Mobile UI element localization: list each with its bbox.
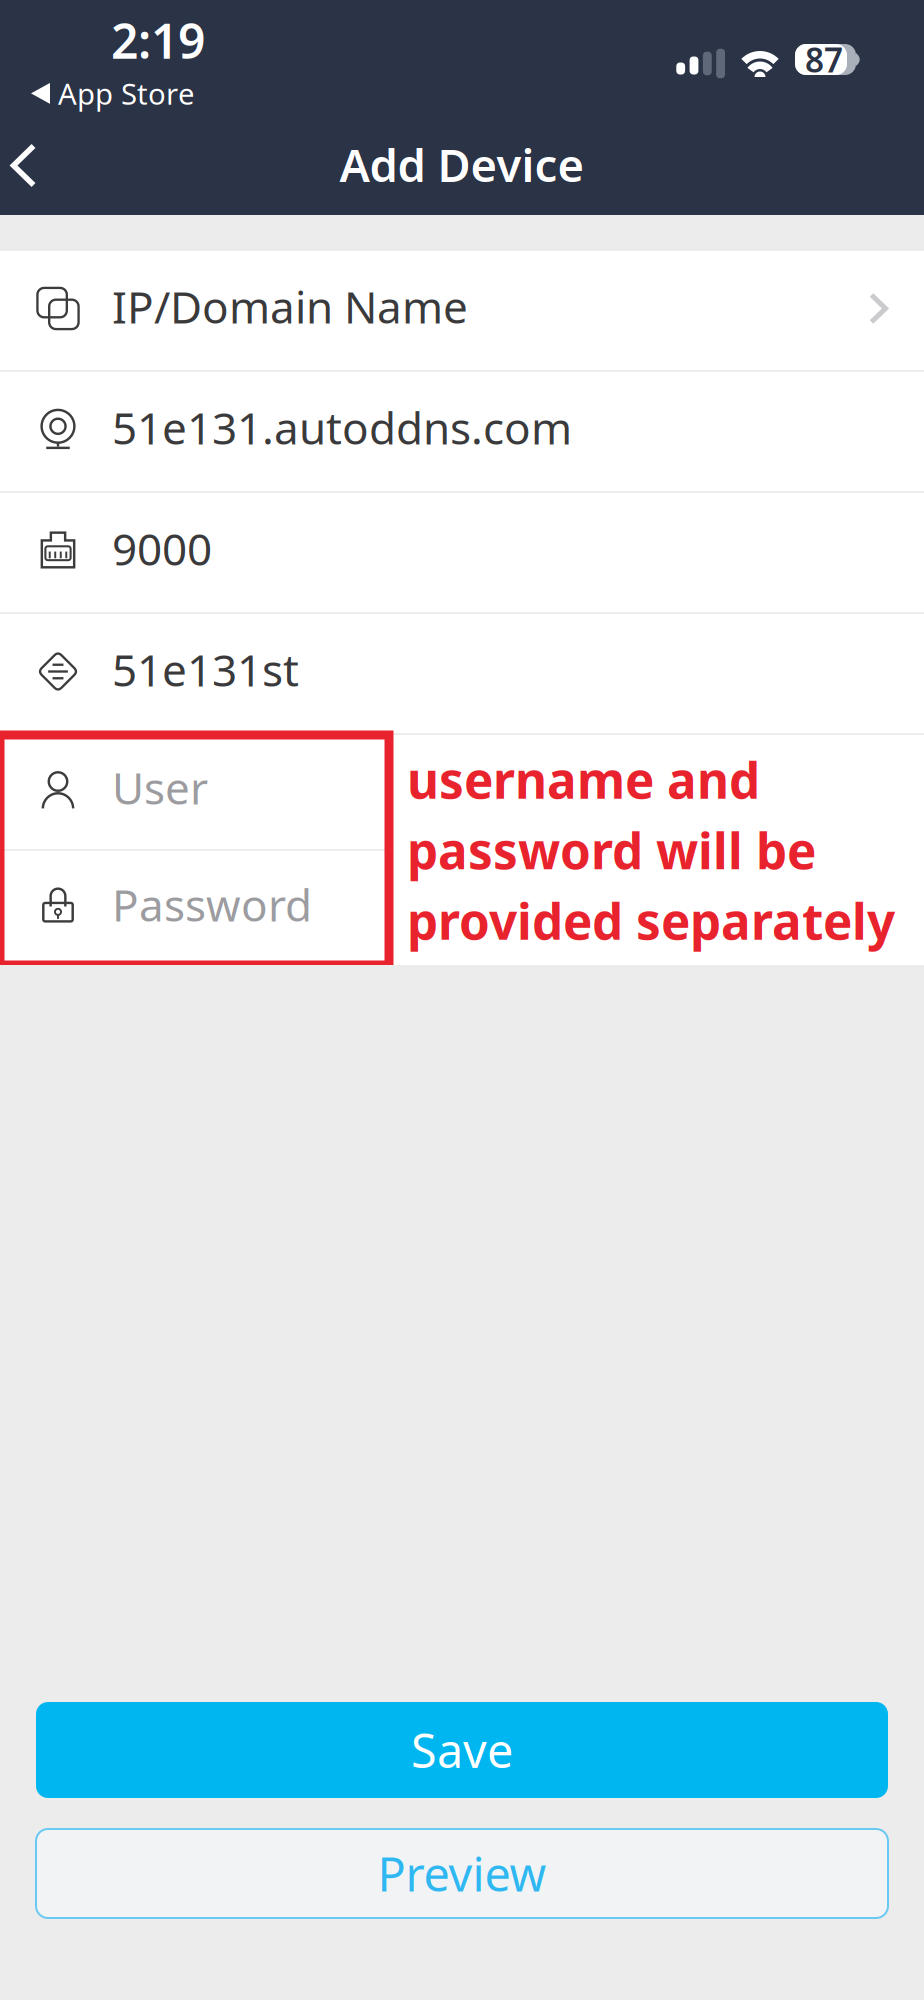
staticText: username and bbox=[407, 747, 760, 812]
staticText: provided separately bbox=[407, 888, 895, 953]
staticText: 2:19 bbox=[111, 8, 205, 72]
button[interactable]: Back bbox=[0, 119, 66, 211]
button[interactable]: IP/Domain Name bbox=[0, 251, 924, 370]
staticText: 9000 bbox=[112, 519, 212, 578]
button[interactable]: 51e131.autoddns.com bbox=[0, 372, 924, 491]
button[interactable]: Preview bbox=[36, 1829, 888, 1918]
button[interactable]: Save bbox=[36, 1702, 888, 1798]
staticText: Password bbox=[112, 875, 312, 934]
staticText: password will be bbox=[407, 817, 816, 883]
staticText: Preview bbox=[377, 1842, 546, 1904]
staticText: IP/Domain Name bbox=[112, 277, 468, 336]
button[interactable]: 51e131st bbox=[0, 614, 924, 733]
staticText: 51e131st bbox=[112, 640, 299, 699]
staticText: 51e131.autoddns.com bbox=[112, 398, 572, 457]
button[interactable]: Password bbox=[0, 851, 389, 966]
staticText: 87 bbox=[805, 37, 843, 82]
staticText: Save bbox=[411, 1719, 513, 1781]
button[interactable]: 9000 bbox=[0, 493, 924, 612]
staticText: Add Device bbox=[339, 134, 584, 195]
staticText: App Store bbox=[58, 74, 195, 113]
button[interactable]: User bbox=[0, 734, 389, 849]
staticText: User bbox=[112, 758, 208, 817]
